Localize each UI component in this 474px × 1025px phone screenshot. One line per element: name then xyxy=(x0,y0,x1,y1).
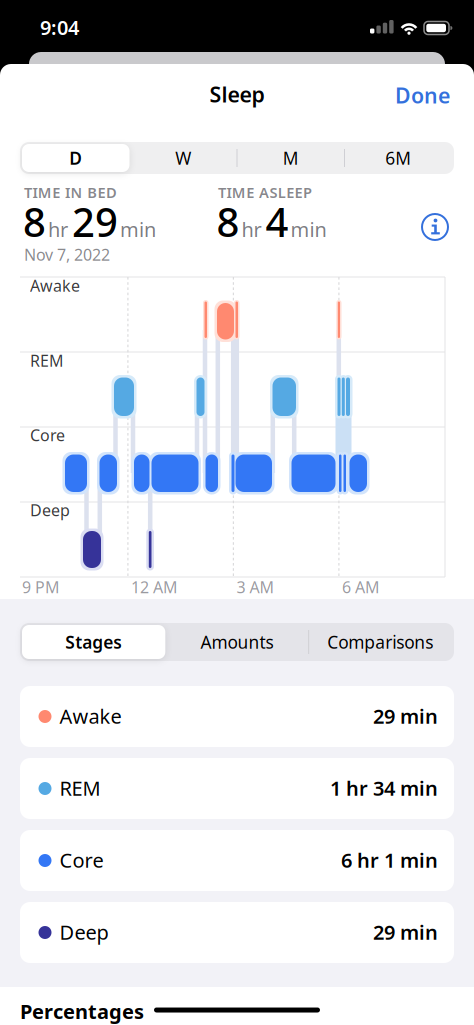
staticText: Percentages xyxy=(20,998,144,1025)
staticText: min xyxy=(120,216,156,243)
staticText: 8 xyxy=(216,195,239,248)
staticText: Sleep xyxy=(209,80,264,108)
staticText: Nov 7, 2022 xyxy=(24,244,110,265)
button[interactable]: More info xyxy=(420,212,450,242)
staticText: W xyxy=(175,146,191,169)
button[interactable]: Core xyxy=(20,830,454,891)
staticText: D xyxy=(69,146,82,169)
staticText: 12 AM xyxy=(131,576,178,598)
staticText: Core xyxy=(30,424,65,446)
button[interactable]: 6M xyxy=(344,142,452,174)
button[interactable]: Done xyxy=(394,81,450,109)
staticText: 9 PM xyxy=(22,576,60,598)
staticText: 29 xyxy=(72,195,118,248)
staticText: TIME IN BED xyxy=(24,182,117,202)
staticText: 6M xyxy=(385,146,411,169)
staticText: 1 hr 34 min xyxy=(330,775,438,801)
button[interactable]: Stages xyxy=(22,623,165,661)
button[interactable]: Comparisons xyxy=(309,623,452,661)
button[interactable]: Awake xyxy=(20,686,454,747)
staticText: REM xyxy=(59,775,100,801)
staticText: Comparisons xyxy=(327,630,433,653)
staticText: hr xyxy=(241,216,261,243)
staticText: Stages xyxy=(65,630,122,653)
button[interactable]: Deep xyxy=(20,902,454,963)
staticText: 3 AM xyxy=(236,576,274,598)
staticText: Amounts xyxy=(200,630,273,653)
staticText: min xyxy=(290,216,326,243)
staticText: 29 min xyxy=(373,703,438,729)
staticText: Deep xyxy=(30,499,70,521)
button[interactable]: M xyxy=(237,142,344,174)
staticText: 29 min xyxy=(373,919,438,945)
staticText: 6 AM xyxy=(342,576,380,598)
staticText: Awake xyxy=(30,275,80,296)
staticText: hr xyxy=(48,216,68,243)
staticText: 8 xyxy=(23,195,46,248)
staticText: Awake xyxy=(59,703,121,729)
staticText: 9:04 xyxy=(40,14,79,41)
staticText: 4 xyxy=(265,195,288,248)
button[interactable]: D xyxy=(22,142,129,174)
button[interactable]: Amounts xyxy=(165,623,309,661)
staticText: M xyxy=(283,146,299,169)
staticText: TIME ASLEEP xyxy=(218,182,312,202)
staticText: Deep xyxy=(59,919,108,945)
staticText: Done xyxy=(395,81,450,109)
button[interactable]: REM xyxy=(20,758,454,819)
button[interactable]: W xyxy=(129,142,237,174)
staticText: 6 hr 1 min xyxy=(341,847,438,873)
staticText: Core xyxy=(59,847,103,873)
staticText: REM xyxy=(30,350,64,371)
